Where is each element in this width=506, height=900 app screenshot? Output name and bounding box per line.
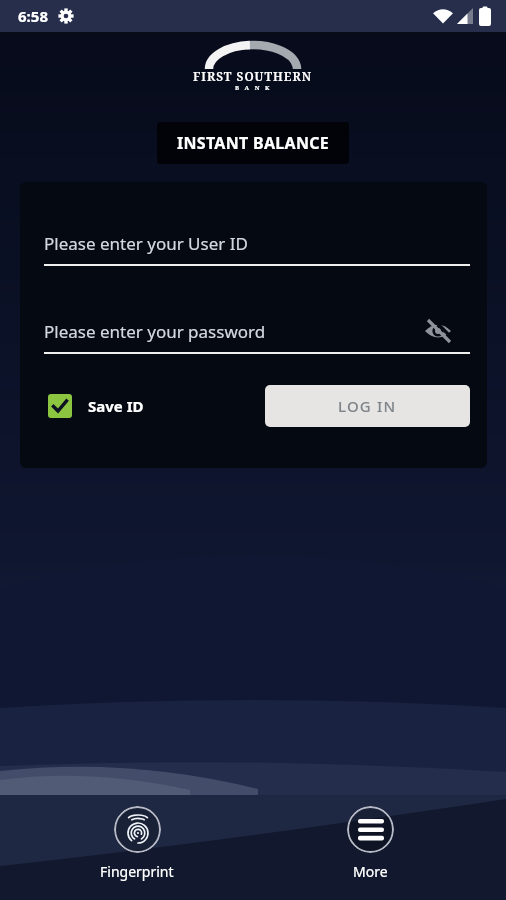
staticText: 6:58 (18, 6, 48, 26)
staticText: B A N K (235, 84, 272, 92)
staticText: Please enter your password (44, 320, 266, 343)
button[interactable] (424, 319, 452, 343)
staticText: More (353, 862, 388, 881)
staticText: LOG IN (338, 396, 397, 416)
staticText: Save ID (88, 396, 144, 416)
button[interactable] (48, 394, 72, 418)
button[interactable]: Fingerprint (77, 795, 197, 881)
button[interactable]: LOG IN (265, 385, 470, 427)
staticText: INSTANT BALANCE (177, 132, 330, 154)
staticText: Fingerprint (100, 862, 174, 881)
staticText: FIRST SOUTHERN (193, 68, 313, 84)
button[interactable]: More (310, 795, 430, 881)
button[interactable]: INSTANT BALANCE (157, 122, 349, 164)
staticText: Please enter your User ID (44, 232, 248, 255)
